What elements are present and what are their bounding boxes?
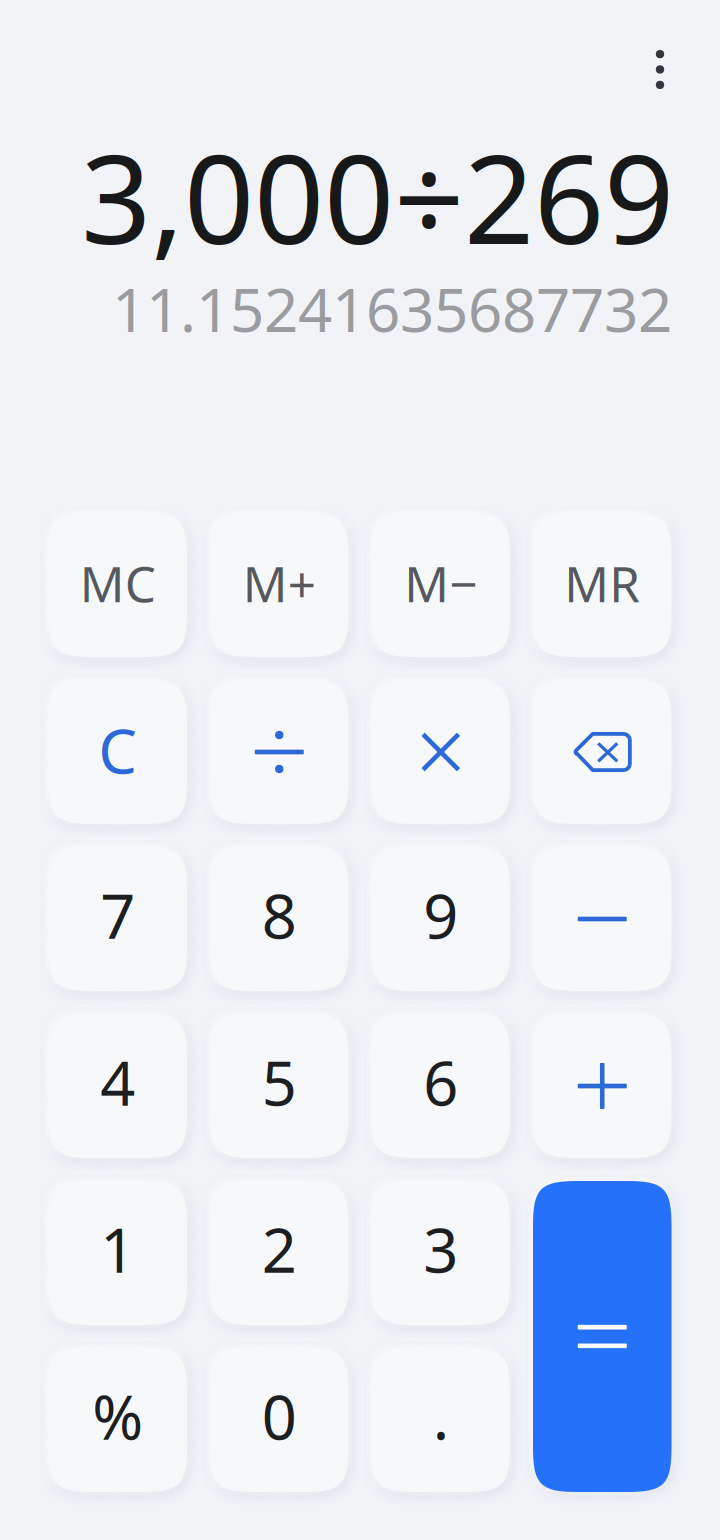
staticText: M+ (243, 550, 316, 616)
button[interactable]: Minus (533, 847, 671, 991)
button[interactable]: 9 (371, 847, 510, 991)
button[interactable]: MR (533, 513, 671, 657)
button[interactable]: More options (612, 0, 708, 139)
staticText: 11.15241635687732 (112, 269, 672, 349)
button[interactable]: M− (371, 513, 510, 657)
button[interactable]: 2 (210, 1181, 348, 1325)
button[interactable]: % (48, 1348, 187, 1492)
staticText: 5 (262, 1041, 297, 1123)
staticText: M− (404, 550, 477, 616)
staticText: 0 (262, 1375, 297, 1457)
button[interactable]: 3 (371, 1181, 510, 1325)
staticText: MR (564, 550, 640, 616)
button[interactable]: MC (48, 513, 187, 657)
staticText: C (98, 709, 137, 791)
staticText: 6 (423, 1041, 458, 1123)
button[interactable]: 8 (210, 847, 348, 991)
staticText: 9 (423, 874, 458, 956)
staticText: 1 (100, 1208, 135, 1290)
staticText: 8 (262, 874, 297, 956)
button[interactable]: Equals (533, 1181, 671, 1492)
button[interactable]: 6 (371, 1014, 510, 1158)
button[interactable]: 0 (210, 1348, 348, 1492)
button[interactable]: 4 (48, 1014, 187, 1158)
staticText: . (433, 1375, 449, 1457)
button[interactable]: Divide (210, 680, 348, 824)
button[interactable]: Backspace (533, 680, 671, 824)
staticText: 7 (100, 874, 135, 956)
staticText: 4 (100, 1041, 135, 1123)
button[interactable]: Multiply (371, 680, 510, 824)
button[interactable]: 1 (48, 1181, 187, 1325)
button[interactable]: C (48, 680, 187, 824)
staticText: % (92, 1375, 143, 1457)
button[interactable]: M+ (210, 513, 348, 657)
button[interactable]: 7 (48, 847, 187, 991)
staticText: 3 (423, 1208, 458, 1290)
button[interactable]: Plus (533, 1014, 671, 1158)
staticText: 2 (262, 1208, 297, 1290)
staticText: 3,000÷269 (81, 115, 674, 278)
button[interactable]: 5 (210, 1014, 348, 1158)
staticText: MC (80, 550, 156, 616)
button[interactable]: . (371, 1348, 510, 1492)
